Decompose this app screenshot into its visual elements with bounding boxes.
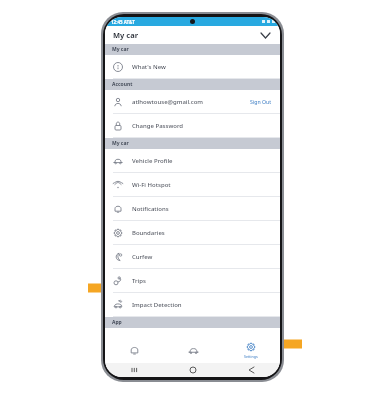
- button[interactable]: Notifications: [105, 197, 280, 221]
- button[interactable]: Back: [222, 363, 280, 377]
- button[interactable]: My car: [164, 337, 222, 363]
- staticText: atlhowtouse@gmail.com: [132, 98, 250, 106]
- button[interactable]: Trips: [105, 269, 280, 293]
- staticText: My car: [112, 140, 129, 147]
- button[interactable]: atlhowtouse@gmail.com: [105, 90, 280, 114]
- staticText: Wi-Fi Hotspot: [132, 181, 171, 189]
- staticText: Account: [112, 81, 133, 88]
- staticText: What's New: [132, 63, 166, 71]
- button[interactable]: Home: [164, 363, 222, 377]
- button[interactable]: Change Password: [105, 114, 280, 138]
- staticText: Settings: [244, 354, 258, 359]
- button[interactable]: Boundaries: [105, 221, 280, 245]
- staticText: 12:45 AT&T: [111, 19, 135, 25]
- button[interactable]: Vehicle Profile: [105, 149, 280, 173]
- button[interactable]: Notifications: [105, 337, 164, 363]
- staticText: Notifications: [132, 205, 169, 213]
- staticText: App: [112, 319, 122, 326]
- button[interactable]: What's New: [105, 55, 280, 79]
- button[interactable]: Recents: [105, 363, 164, 377]
- staticText: My car: [113, 30, 139, 40]
- button[interactable]: Settings: [222, 337, 280, 363]
- staticText: Boundaries: [132, 229, 165, 237]
- staticText: Sign Out: [250, 98, 272, 105]
- staticText: Vehicle Profile: [132, 157, 173, 165]
- staticText: Change Password: [132, 122, 184, 130]
- staticText: Curfew: [132, 253, 153, 261]
- button[interactable]: Curfew: [105, 245, 280, 269]
- staticText: Trips: [132, 277, 146, 285]
- button[interactable]: Expand: [258, 28, 272, 42]
- button[interactable]: Wi-Fi Hotspot: [105, 173, 280, 197]
- button[interactable]: Impact Detection: [105, 293, 280, 317]
- staticText: My car: [112, 46, 129, 53]
- staticText: Impact Detection: [132, 301, 182, 309]
